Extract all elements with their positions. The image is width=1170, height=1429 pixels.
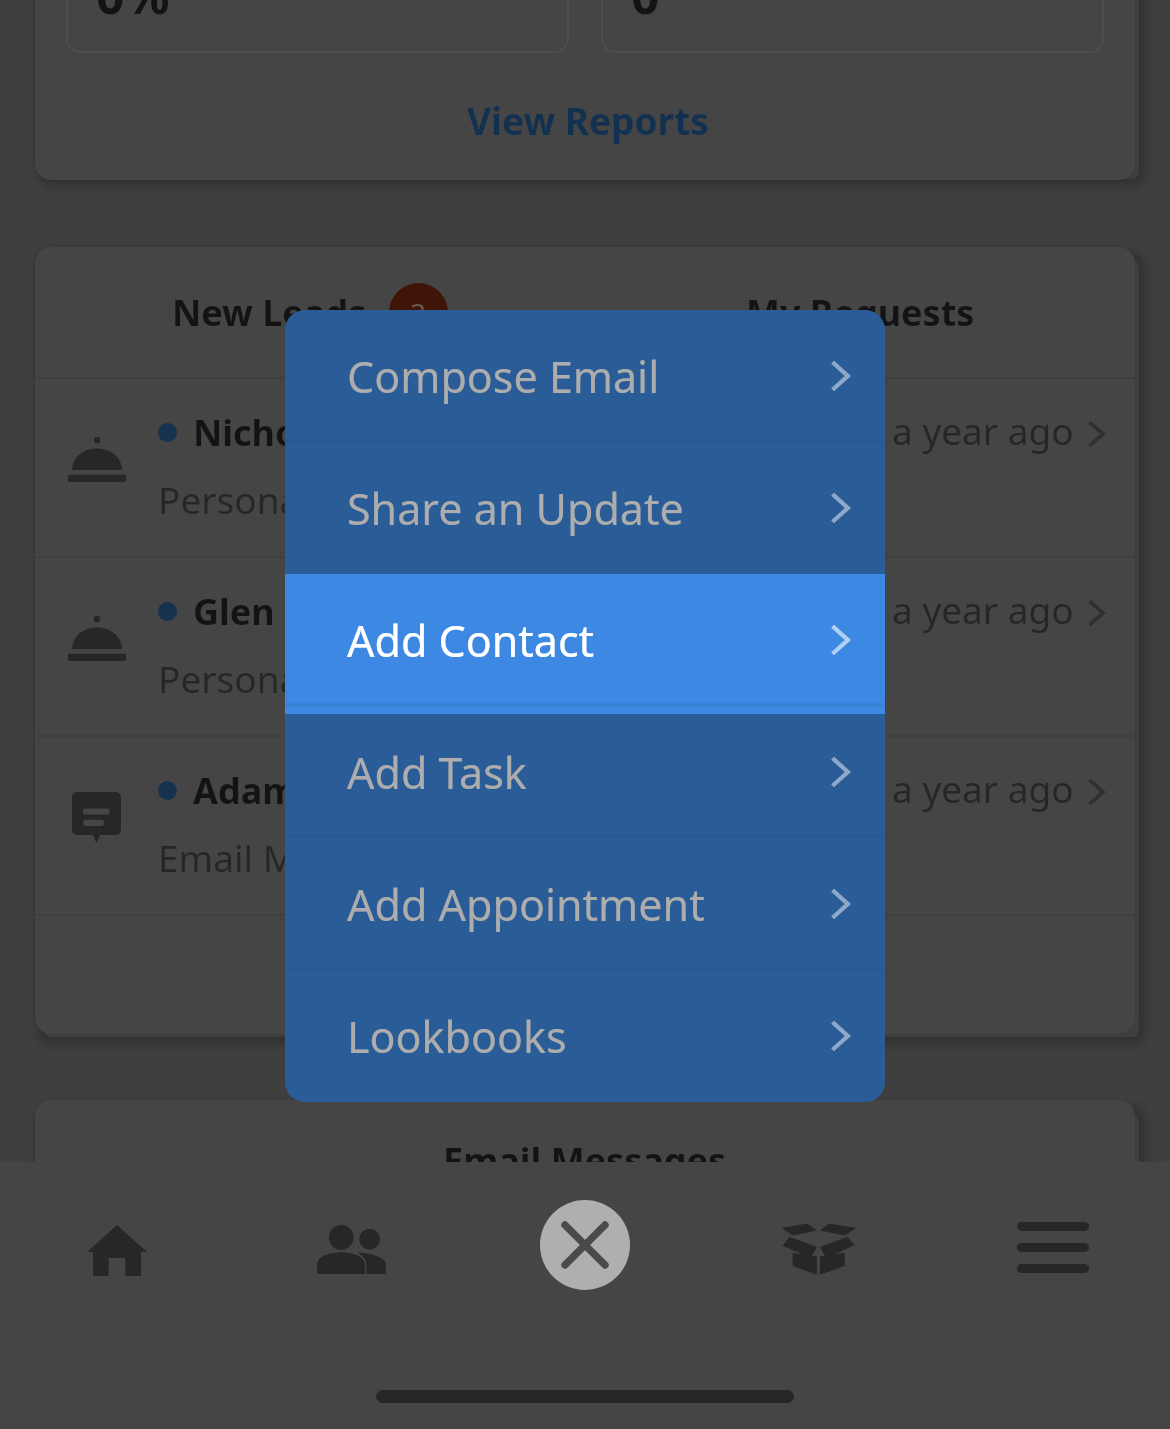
staticText: Email M xyxy=(158,832,297,882)
staticText: Lookbooks xyxy=(347,1007,567,1066)
staticText: Add Appointment xyxy=(347,875,705,934)
staticText: Add Task xyxy=(347,743,527,802)
button[interactable]: a year ago xyxy=(585,737,1135,914)
button[interactable]: Add Task xyxy=(285,706,885,838)
button[interactable]: Nichol xyxy=(35,379,585,556)
staticText: My Requests xyxy=(746,288,975,337)
button[interactable]: Add Contact xyxy=(285,574,885,706)
button[interactable]: Add Appointment xyxy=(285,838,885,970)
staticText: View Reports xyxy=(467,95,709,145)
button[interactable]: Lookbooks xyxy=(285,970,885,1102)
staticText: Glen xyxy=(193,587,275,636)
staticText: Personal xyxy=(158,474,310,524)
staticText: Email Messages xyxy=(443,1136,727,1185)
button[interactable]: Adam xyxy=(35,737,585,914)
staticText: 0% xyxy=(96,0,170,29)
button[interactable]: Close menu xyxy=(468,1162,702,1338)
button[interactable]: Products xyxy=(702,1162,936,1338)
staticText: Share an Update xyxy=(347,479,684,538)
staticText: New Leads xyxy=(172,288,367,337)
button[interactable]: Home xyxy=(0,1162,234,1338)
button[interactable]: Share an Update xyxy=(285,442,885,574)
staticText: Adam xyxy=(193,766,298,815)
button[interactable]: Compose Email xyxy=(285,310,885,442)
button[interactable]: More xyxy=(936,1162,1170,1338)
staticText: Compose Email xyxy=(347,347,660,406)
staticText: Personal xyxy=(158,653,310,703)
button[interactable]: Glen xyxy=(35,558,585,735)
staticText: a year ago xyxy=(892,405,1074,455)
staticText: Nichol xyxy=(193,408,309,457)
button[interactable]: a year ago xyxy=(585,558,1135,735)
button[interactable]: Close menu xyxy=(540,1200,630,1290)
staticText: 0 xyxy=(631,0,660,29)
button[interactable]: Contacts xyxy=(234,1162,468,1338)
staticText: Add Contact xyxy=(347,611,595,670)
staticText: a year ago xyxy=(892,584,1074,634)
staticText: 3 xyxy=(410,294,427,332)
button[interactable]: a year ago xyxy=(585,379,1135,556)
staticText: a year ago xyxy=(892,763,1074,813)
